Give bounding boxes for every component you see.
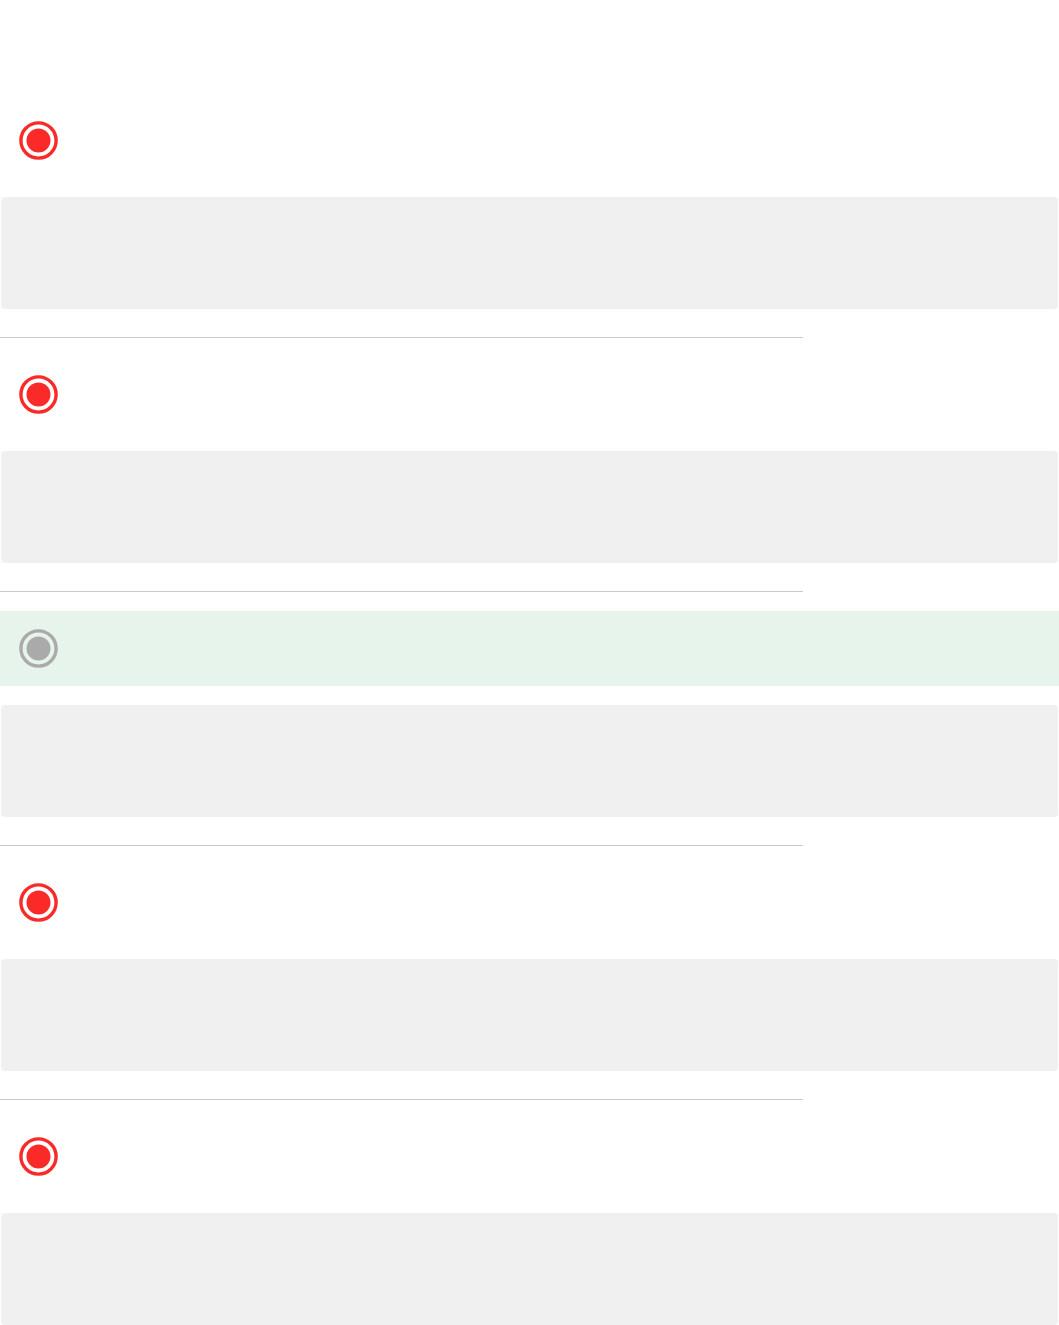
button[interactable]: Option 3 bbox=[0, 611, 1059, 686]
button[interactable]: Option 2 bbox=[0, 357, 1059, 432]
button[interactable]: Option 5 bbox=[0, 1119, 1059, 1194]
button[interactable]: Option 4 bbox=[0, 865, 1059, 940]
button[interactable]: Option 1 bbox=[0, 103, 1059, 178]
